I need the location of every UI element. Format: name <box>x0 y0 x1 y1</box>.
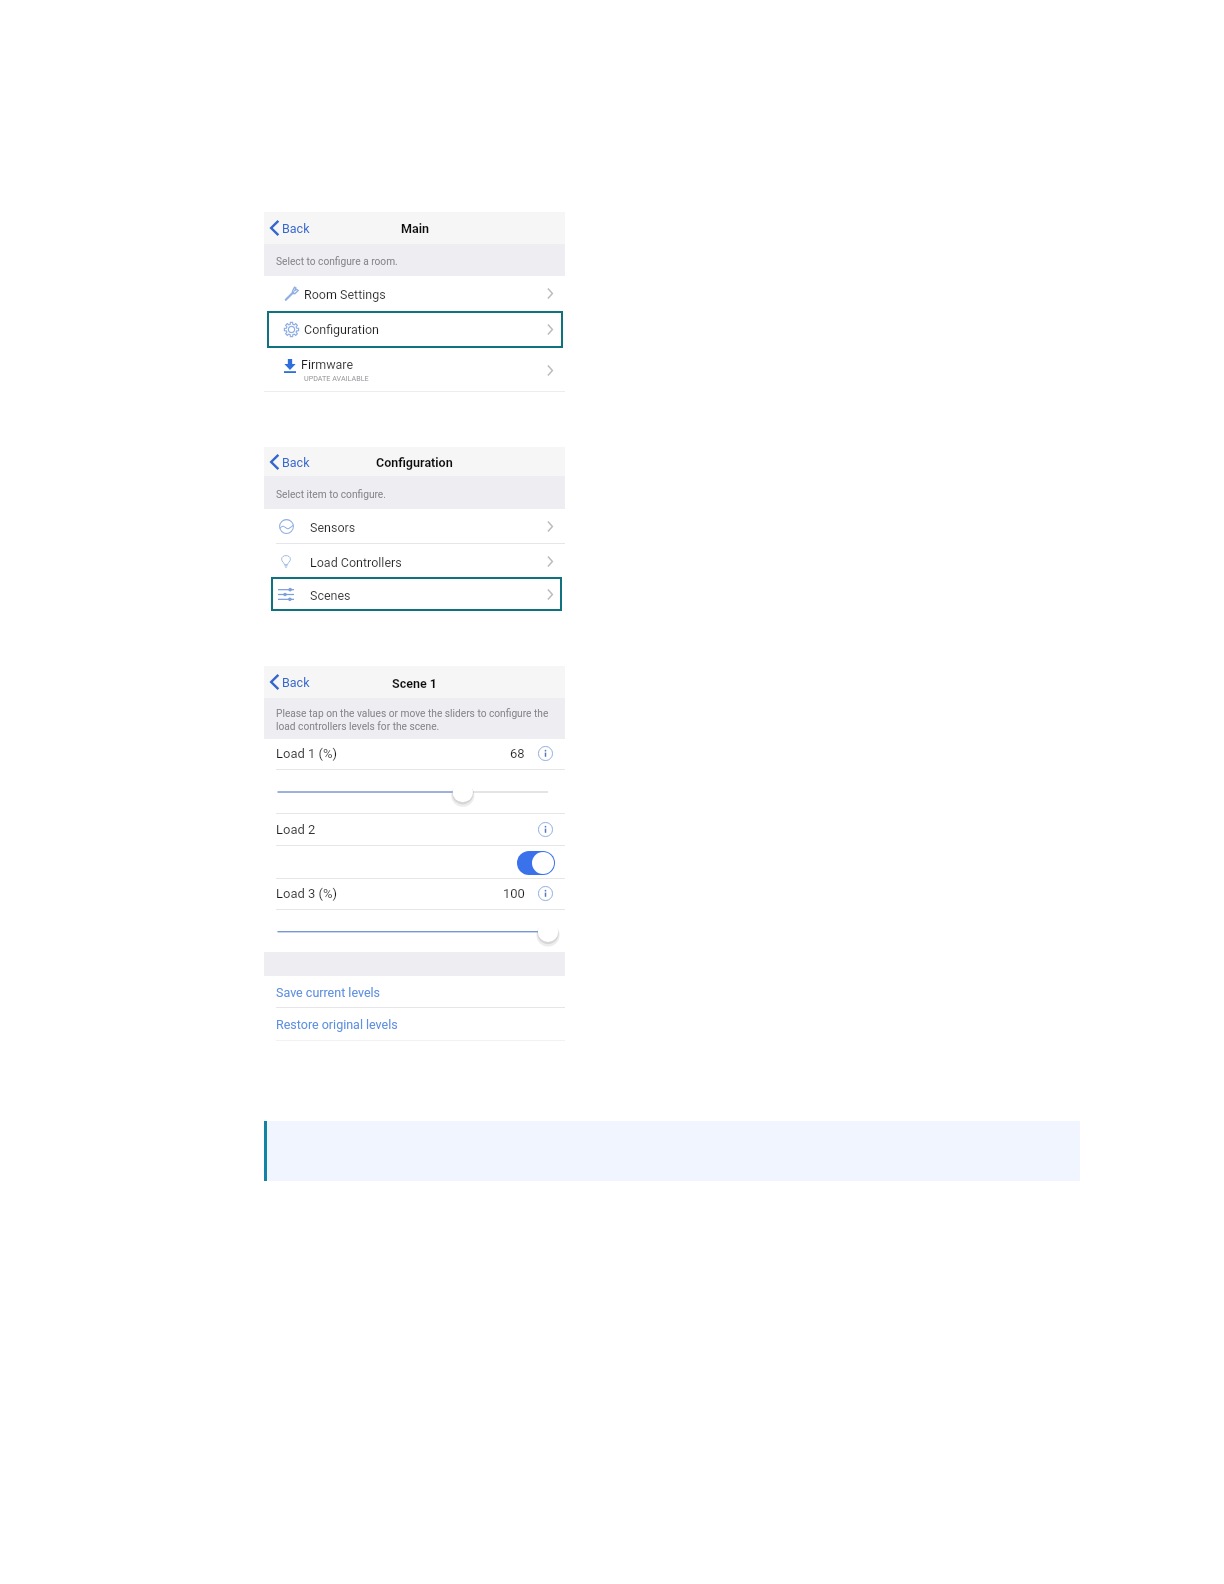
button[interactable]: Configuration <box>264 311 565 348</box>
button[interactable]: Info <box>538 886 553 901</box>
button[interactable] <box>264 770 565 814</box>
button[interactable]: Toggle Load 2 <box>517 851 555 875</box>
button[interactable]: Room Settings <box>264 276 565 311</box>
button[interactable]: Firmware <box>264 348 565 392</box>
staticText: 100 <box>503 886 525 901</box>
staticText: Restore original levels <box>276 1017 398 1032</box>
staticText: Sensors <box>310 520 356 535</box>
staticText: Scene 1 <box>392 676 438 691</box>
staticText: Load 3 (%) <box>276 886 338 901</box>
staticText: 68 <box>510 746 525 761</box>
staticText: Room Settings <box>304 287 386 302</box>
staticText: Select to configure a room. <box>276 256 398 268</box>
staticText: Load 2 <box>276 822 316 837</box>
button[interactable]: Sensors <box>264 509 565 544</box>
button[interactable]: Load 3 (%) <box>264 878 565 909</box>
staticText: Main <box>401 221 429 236</box>
button[interactable]: Info <box>538 822 553 837</box>
staticText: UPDATE AVAILABLE <box>304 374 369 382</box>
button[interactable] <box>271 577 562 611</box>
staticText: Firmware <box>301 357 354 372</box>
button[interactable]: Restore original levels <box>264 1008 565 1041</box>
staticText: Load 1 (%) <box>276 746 338 761</box>
button[interactable]: Back <box>270 454 310 470</box>
button[interactable]: Back <box>270 220 310 236</box>
button[interactable] <box>264 910 565 952</box>
button[interactable]: Save current levels <box>264 976 565 1008</box>
button[interactable]: Load 2 <box>264 813 565 845</box>
button[interactable]: Load Controllers <box>264 544 565 578</box>
button[interactable] <box>267 311 563 348</box>
button[interactable]: Load 1 (%) <box>264 738 565 769</box>
staticText: Configuration <box>376 455 453 470</box>
staticText: Back <box>282 455 310 470</box>
staticText: Configuration <box>304 322 379 337</box>
button[interactable]: Scenes <box>264 578 565 611</box>
button[interactable]: Info <box>538 746 553 761</box>
staticText: Load Controllers <box>310 555 402 570</box>
staticText: Save current levels <box>276 985 381 1000</box>
staticText: Back <box>282 675 310 690</box>
staticText: Scenes <box>310 588 351 603</box>
button[interactable]: Back <box>270 674 310 690</box>
staticText: Back <box>282 221 310 236</box>
staticText: Select item to configure. <box>276 489 386 501</box>
staticText: Please tap on the values or move the sli… <box>276 708 555 732</box>
